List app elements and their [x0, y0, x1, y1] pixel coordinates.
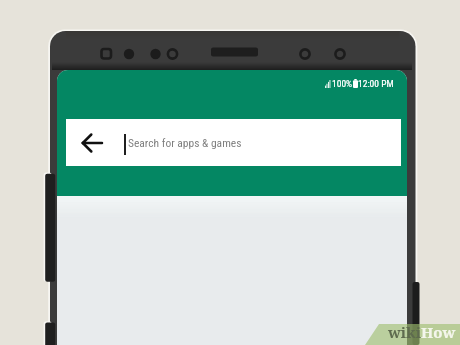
staticText: How — [421, 322, 456, 342]
staticText: 12:00 PM — [358, 78, 394, 89]
staticText: Search for apps & games — [128, 136, 242, 149]
staticText: 100% — [332, 78, 353, 89]
staticText: wiki — [388, 322, 421, 342]
button[interactable]: Back — [66, 119, 401, 166]
button[interactable]: Back — [79, 128, 105, 158]
